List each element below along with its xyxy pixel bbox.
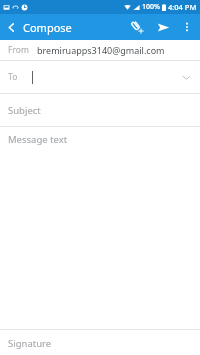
button[interactable]: Signature (0, 330, 200, 355)
button[interactable]: Send (150, 14, 176, 40)
button[interactable]: Attach file (124, 14, 150, 40)
button[interactable]: Subject (0, 94, 200, 126)
button[interactable]: From (0, 40, 200, 60)
button[interactable]: More options (176, 16, 198, 38)
staticText: Message text (8, 133, 68, 146)
staticText: To (8, 71, 18, 83)
button[interactable]: Show Cc and Bcc (178, 69, 194, 85)
staticText: From (8, 44, 29, 56)
staticText: Subject (8, 104, 41, 117)
other: Back (6, 22, 17, 33)
button[interactable]: To (0, 61, 200, 93)
button[interactable]: Message text (0, 127, 200, 329)
staticText: 100% (142, 2, 160, 12)
staticText: Signature (8, 337, 52, 350)
staticText: bremiruapps3140@gmail.com (37, 44, 165, 56)
staticText: 4:04 PM (168, 2, 197, 12)
button[interactable]: Back (0, 16, 76, 39)
staticText: Compose (23, 20, 72, 35)
